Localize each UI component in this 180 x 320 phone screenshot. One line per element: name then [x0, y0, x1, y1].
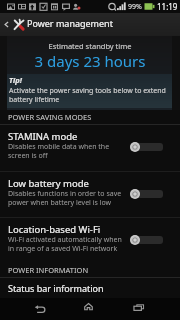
button[interactable]: Power management	[0, 13, 180, 36]
staticText: Activate the power saving tools below to…	[9, 86, 166, 104]
staticText: STAMINA mode	[8, 130, 78, 143]
staticText: POWER INFORMATION	[8, 265, 180, 275]
button[interactable]	[130, 234, 163, 246]
staticText: Wi-Fi activated automatically when in ra…	[8, 235, 122, 253]
staticText: POWER SAVING MODES	[8, 112, 180, 122]
staticText: Location-based Wi-Fi	[8, 223, 101, 236]
button[interactable]: STAMINA mode	[0, 125, 180, 171]
button[interactable]	[130, 188, 163, 200]
staticText: Disables mobile data when the screen is …	[8, 142, 110, 160]
button[interactable]: Recent apps	[125, 298, 153, 320]
button[interactable]: Home	[74, 298, 102, 320]
button[interactable]	[130, 141, 163, 153]
staticText: Power management	[27, 17, 113, 29]
button[interactable]: Status bar information	[0, 278, 180, 300]
button[interactable]: Location-based Wi-Fi	[0, 218, 180, 263]
staticText: Status bar information	[8, 282, 104, 294]
staticText: 3 days 23 hours	[0, 51, 180, 71]
button[interactable]: Low battery mode	[0, 172, 180, 217]
button[interactable]: Back	[26, 298, 54, 320]
staticText: 11:19	[157, 1, 178, 12]
staticText: Disables functions in order to save powe…	[8, 189, 122, 207]
staticText: Low battery mode	[8, 177, 89, 190]
staticText: Estimated standby time	[0, 41, 180, 51]
staticText: 99%	[128, 2, 142, 12]
staticText: Tip!	[9, 75, 22, 85]
